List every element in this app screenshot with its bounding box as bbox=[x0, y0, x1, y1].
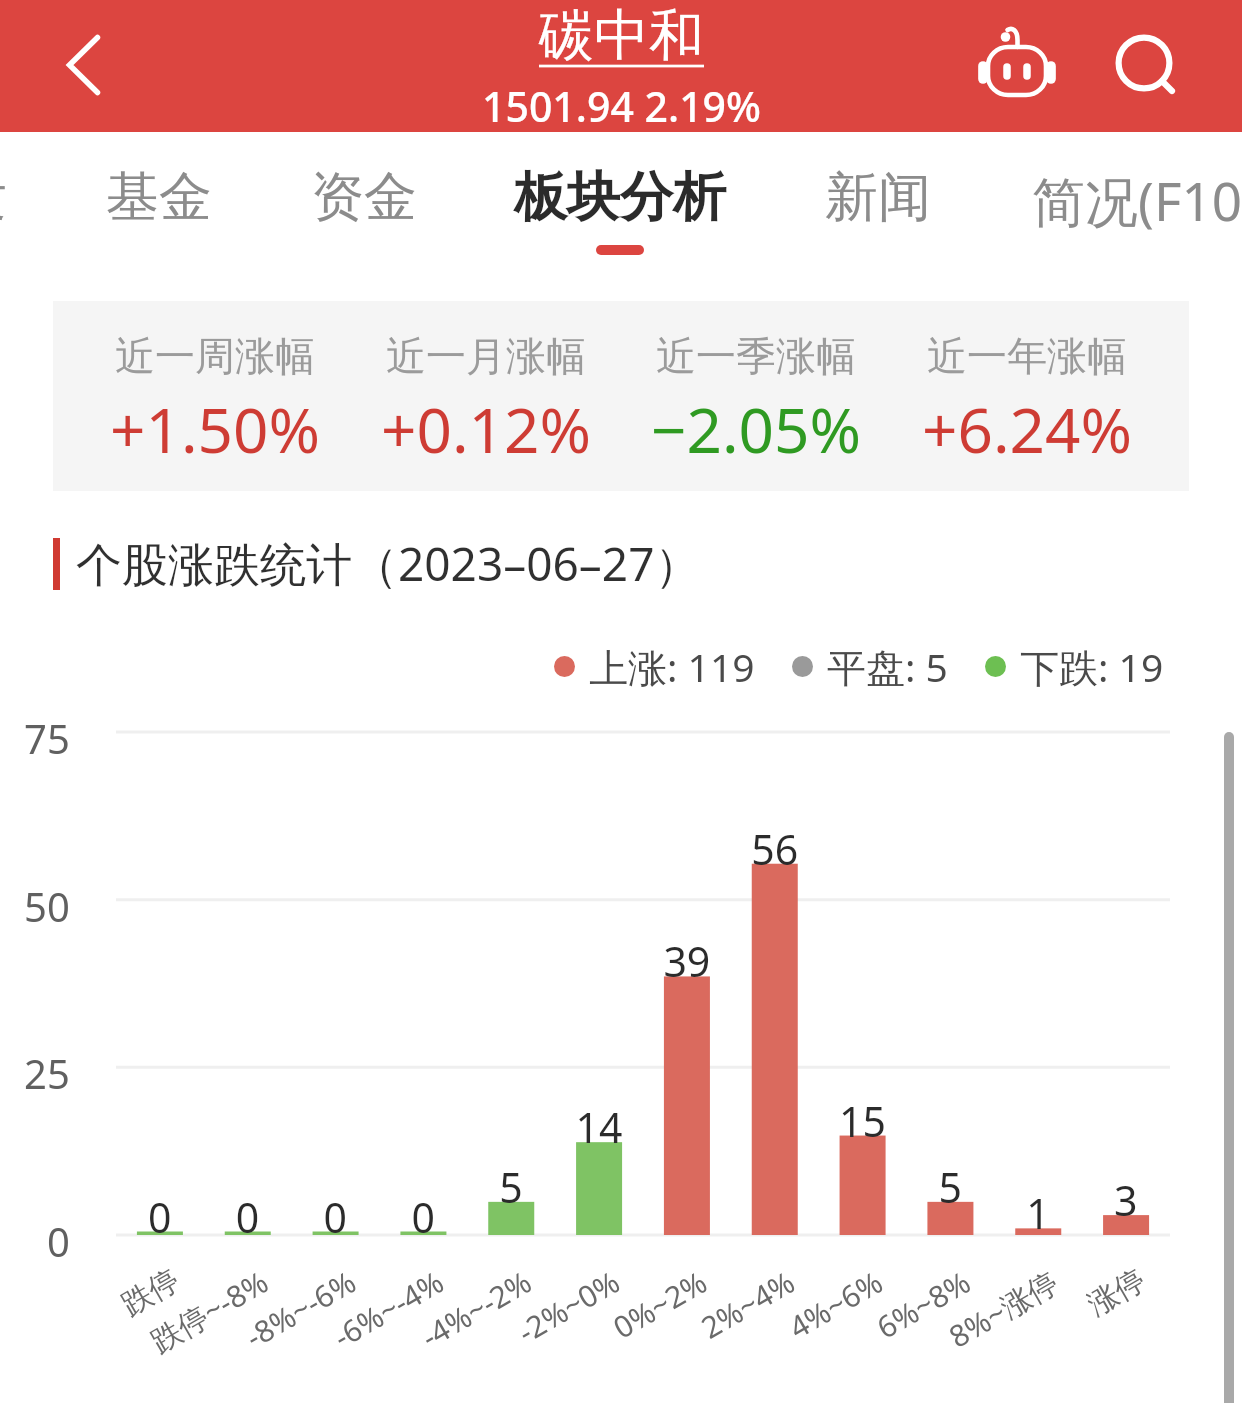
staticText: 简况(F10) bbox=[1032, 164, 1242, 236]
staticText: 下跌: 19 bbox=[1020, 640, 1164, 693]
staticText: 近一年涨幅 bbox=[927, 331, 1127, 381]
staticText: 碳中和 bbox=[539, 1, 704, 70]
staticText: 板块分析 bbox=[514, 164, 726, 231]
staticText: 个股涨跌统计（2023–06–27） bbox=[76, 532, 701, 595]
staticText: +0.12% bbox=[381, 387, 591, 471]
staticText: 上涨: 119 bbox=[589, 640, 755, 693]
button[interactable]: 新闻 bbox=[728, 132, 1028, 262]
staticText: 新闻 bbox=[825, 164, 931, 231]
button[interactable]: 个股涨跌统计（2023–06–27） bbox=[0, 520, 1242, 620]
button[interactable]: 平盘: 5 bbox=[792, 640, 948, 693]
button[interactable]: 简况(F10) bbox=[995, 132, 1242, 262]
button[interactable]: Search bbox=[1092, 12, 1196, 116]
staticText: +6.24% bbox=[922, 387, 1132, 471]
button[interactable]: 板块分析 bbox=[470, 132, 770, 262]
button[interactable]: 上涨: 119 bbox=[554, 640, 755, 693]
staticText: −2.05% bbox=[651, 387, 861, 471]
staticText: 近一季涨幅 bbox=[656, 331, 856, 381]
button[interactable]: 发 bbox=[0, 132, 130, 262]
button[interactable]: 基金 bbox=[9, 132, 309, 262]
staticText: 近一周涨幅 bbox=[115, 331, 315, 381]
staticText: 基金 bbox=[106, 164, 212, 231]
button[interactable]: 资金 bbox=[214, 132, 514, 262]
staticText: 1501.94 2.19% bbox=[482, 78, 761, 133]
button[interactable]: 下跌: 19 bbox=[985, 640, 1164, 693]
staticText: +1.50% bbox=[110, 387, 320, 471]
staticText: 近一月涨幅 bbox=[386, 331, 586, 381]
staticText: 平盘: 5 bbox=[827, 640, 948, 693]
button[interactable]: AI assistant bbox=[965, 16, 1069, 120]
button[interactable]: Back bbox=[22, 15, 122, 115]
staticText: 资金 bbox=[311, 164, 417, 231]
staticText: 发 bbox=[0, 164, 7, 231]
